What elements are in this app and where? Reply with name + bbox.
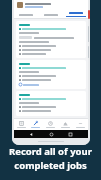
staticText: Record all of your: [9, 145, 92, 158]
button[interactable]: Add job: [28, 119, 43, 130]
button[interactable]: Selected tab: [63, 11, 88, 18]
button[interactable]: Home: [50, 133, 53, 136]
button[interactable]: [16, 91, 86, 116]
button[interactable]: [19, 83, 39, 86]
button[interactable]: Tab: [38, 11, 63, 18]
button[interactable]: [16, 60, 86, 89]
button[interactable]: Reports: [58, 119, 73, 130]
button[interactable]: Timer: [43, 119, 58, 130]
button[interactable]: Tab: [14, 11, 38, 18]
button[interactable]: Status: [16, 21, 86, 58]
button[interactable]: Recents: [69, 133, 72, 136]
button[interactable]: Back: [30, 133, 33, 136]
button[interactable]: Jobs: [14, 119, 28, 130]
staticText: completed jobs: [14, 159, 87, 172]
button[interactable]: More: [73, 119, 88, 130]
